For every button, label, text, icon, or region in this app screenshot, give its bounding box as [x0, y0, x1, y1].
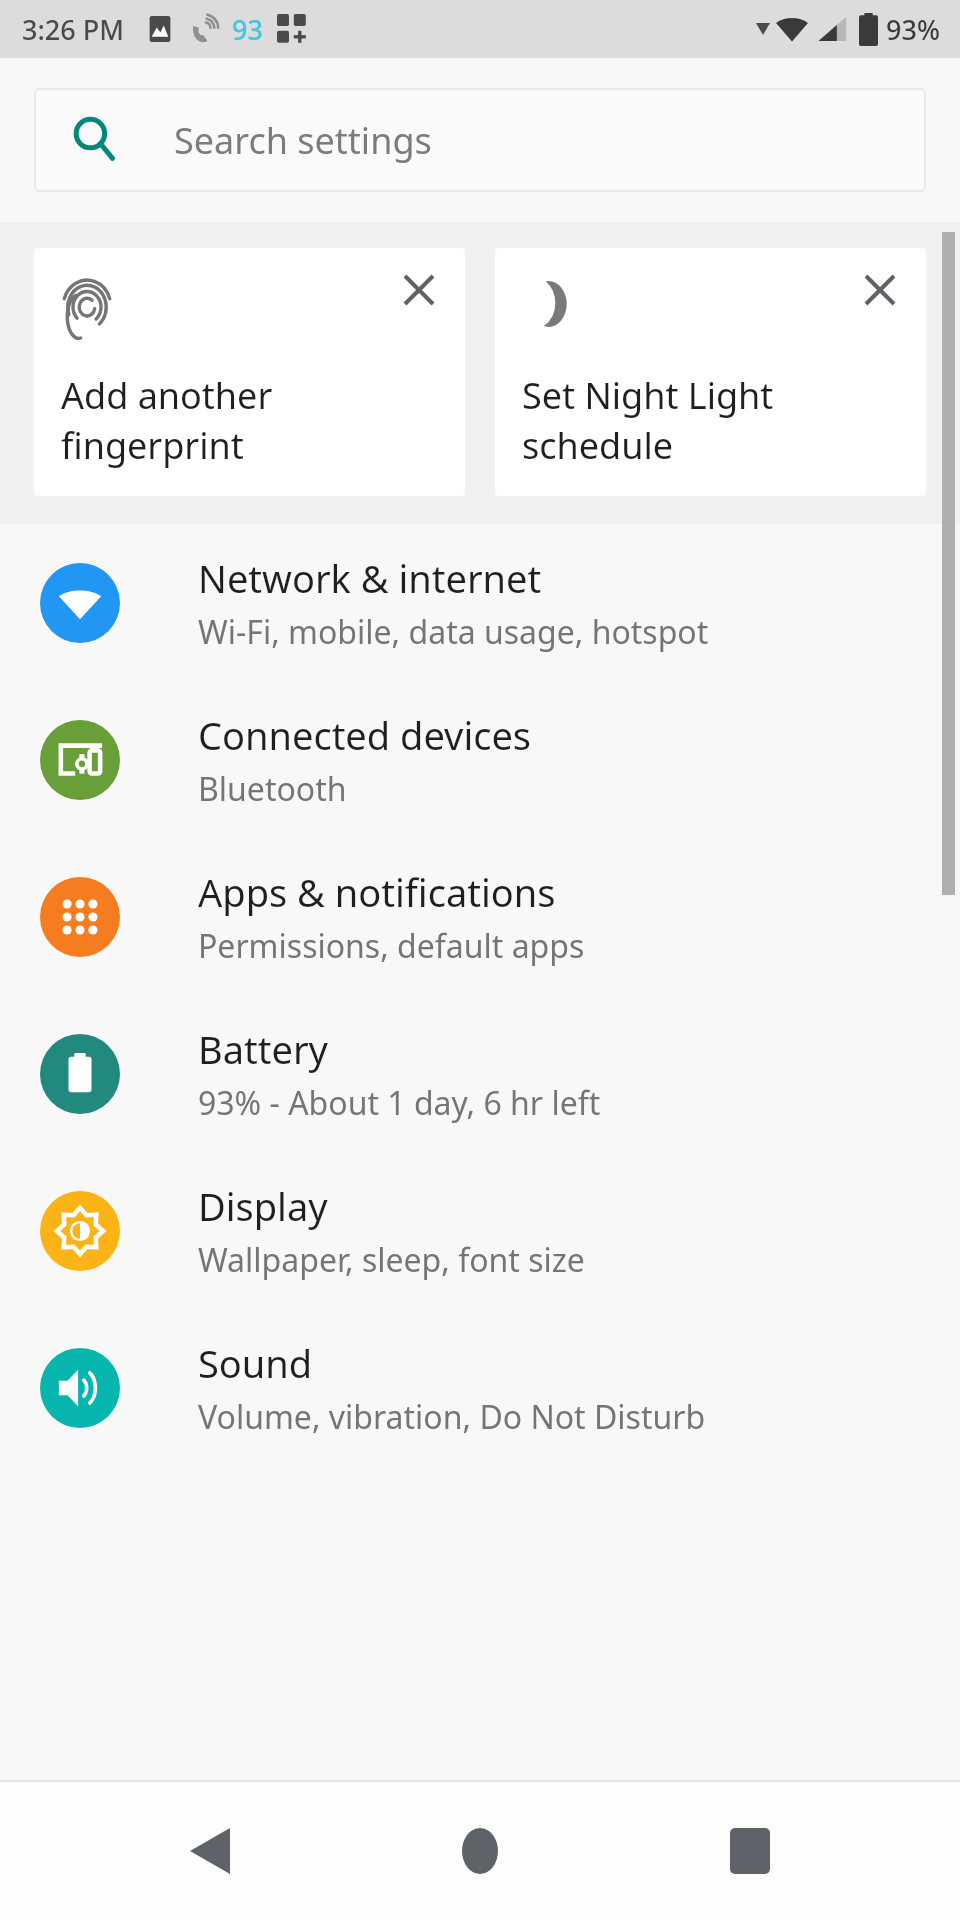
staticText: Display	[198, 1180, 328, 1232]
button[interactable]: Search settings	[34, 88, 926, 192]
staticText: Wi-Fi, mobile, data usage, hotspot	[198, 610, 709, 654]
button[interactable]: Display	[0, 1152, 960, 1309]
staticText: Connected devices	[198, 709, 532, 761]
staticText: Battery	[198, 1023, 328, 1075]
other: Fingerprint	[61, 278, 113, 330]
button[interactable]: Network & internet	[0, 524, 960, 681]
staticText: Wallpaper, sleep, font size	[198, 1238, 585, 1282]
button[interactable]: Recent apps	[690, 1791, 810, 1911]
button[interactable]: Dismiss suggestion	[850, 260, 910, 320]
other: Night light	[522, 278, 574, 330]
button[interactable]: Fingerprint	[34, 248, 465, 496]
staticText: Network & internet	[198, 552, 542, 604]
button[interactable]: Back	[150, 1791, 270, 1911]
staticText: 3:26 PM	[22, 11, 124, 48]
staticText: 93% - About 1 day, 6 hr left	[198, 1081, 601, 1125]
staticText: Permissions, default apps	[198, 924, 585, 968]
button[interactable]: Connected devices	[0, 681, 960, 838]
staticText: 93%	[886, 11, 940, 48]
button[interactable]: Sound	[0, 1309, 960, 1466]
button[interactable]: Dismiss suggestion	[389, 260, 449, 320]
button[interactable]: Night light	[495, 248, 926, 496]
button[interactable]: Apps & notifications	[0, 838, 960, 995]
staticText: Search settings	[174, 116, 432, 165]
staticText: Bluetooth	[198, 767, 347, 811]
staticText: Sound	[198, 1337, 313, 1389]
staticText: Volume, vibration, Do Not Disturb	[198, 1395, 706, 1439]
button[interactable]: Home	[420, 1791, 540, 1911]
button[interactable]: Battery	[0, 995, 960, 1152]
staticText: Add another fingerprint	[61, 371, 273, 470]
staticText: 93	[232, 11, 263, 48]
staticText: Set Night Light schedule	[522, 371, 774, 470]
staticText: Apps & notifications	[198, 866, 556, 918]
